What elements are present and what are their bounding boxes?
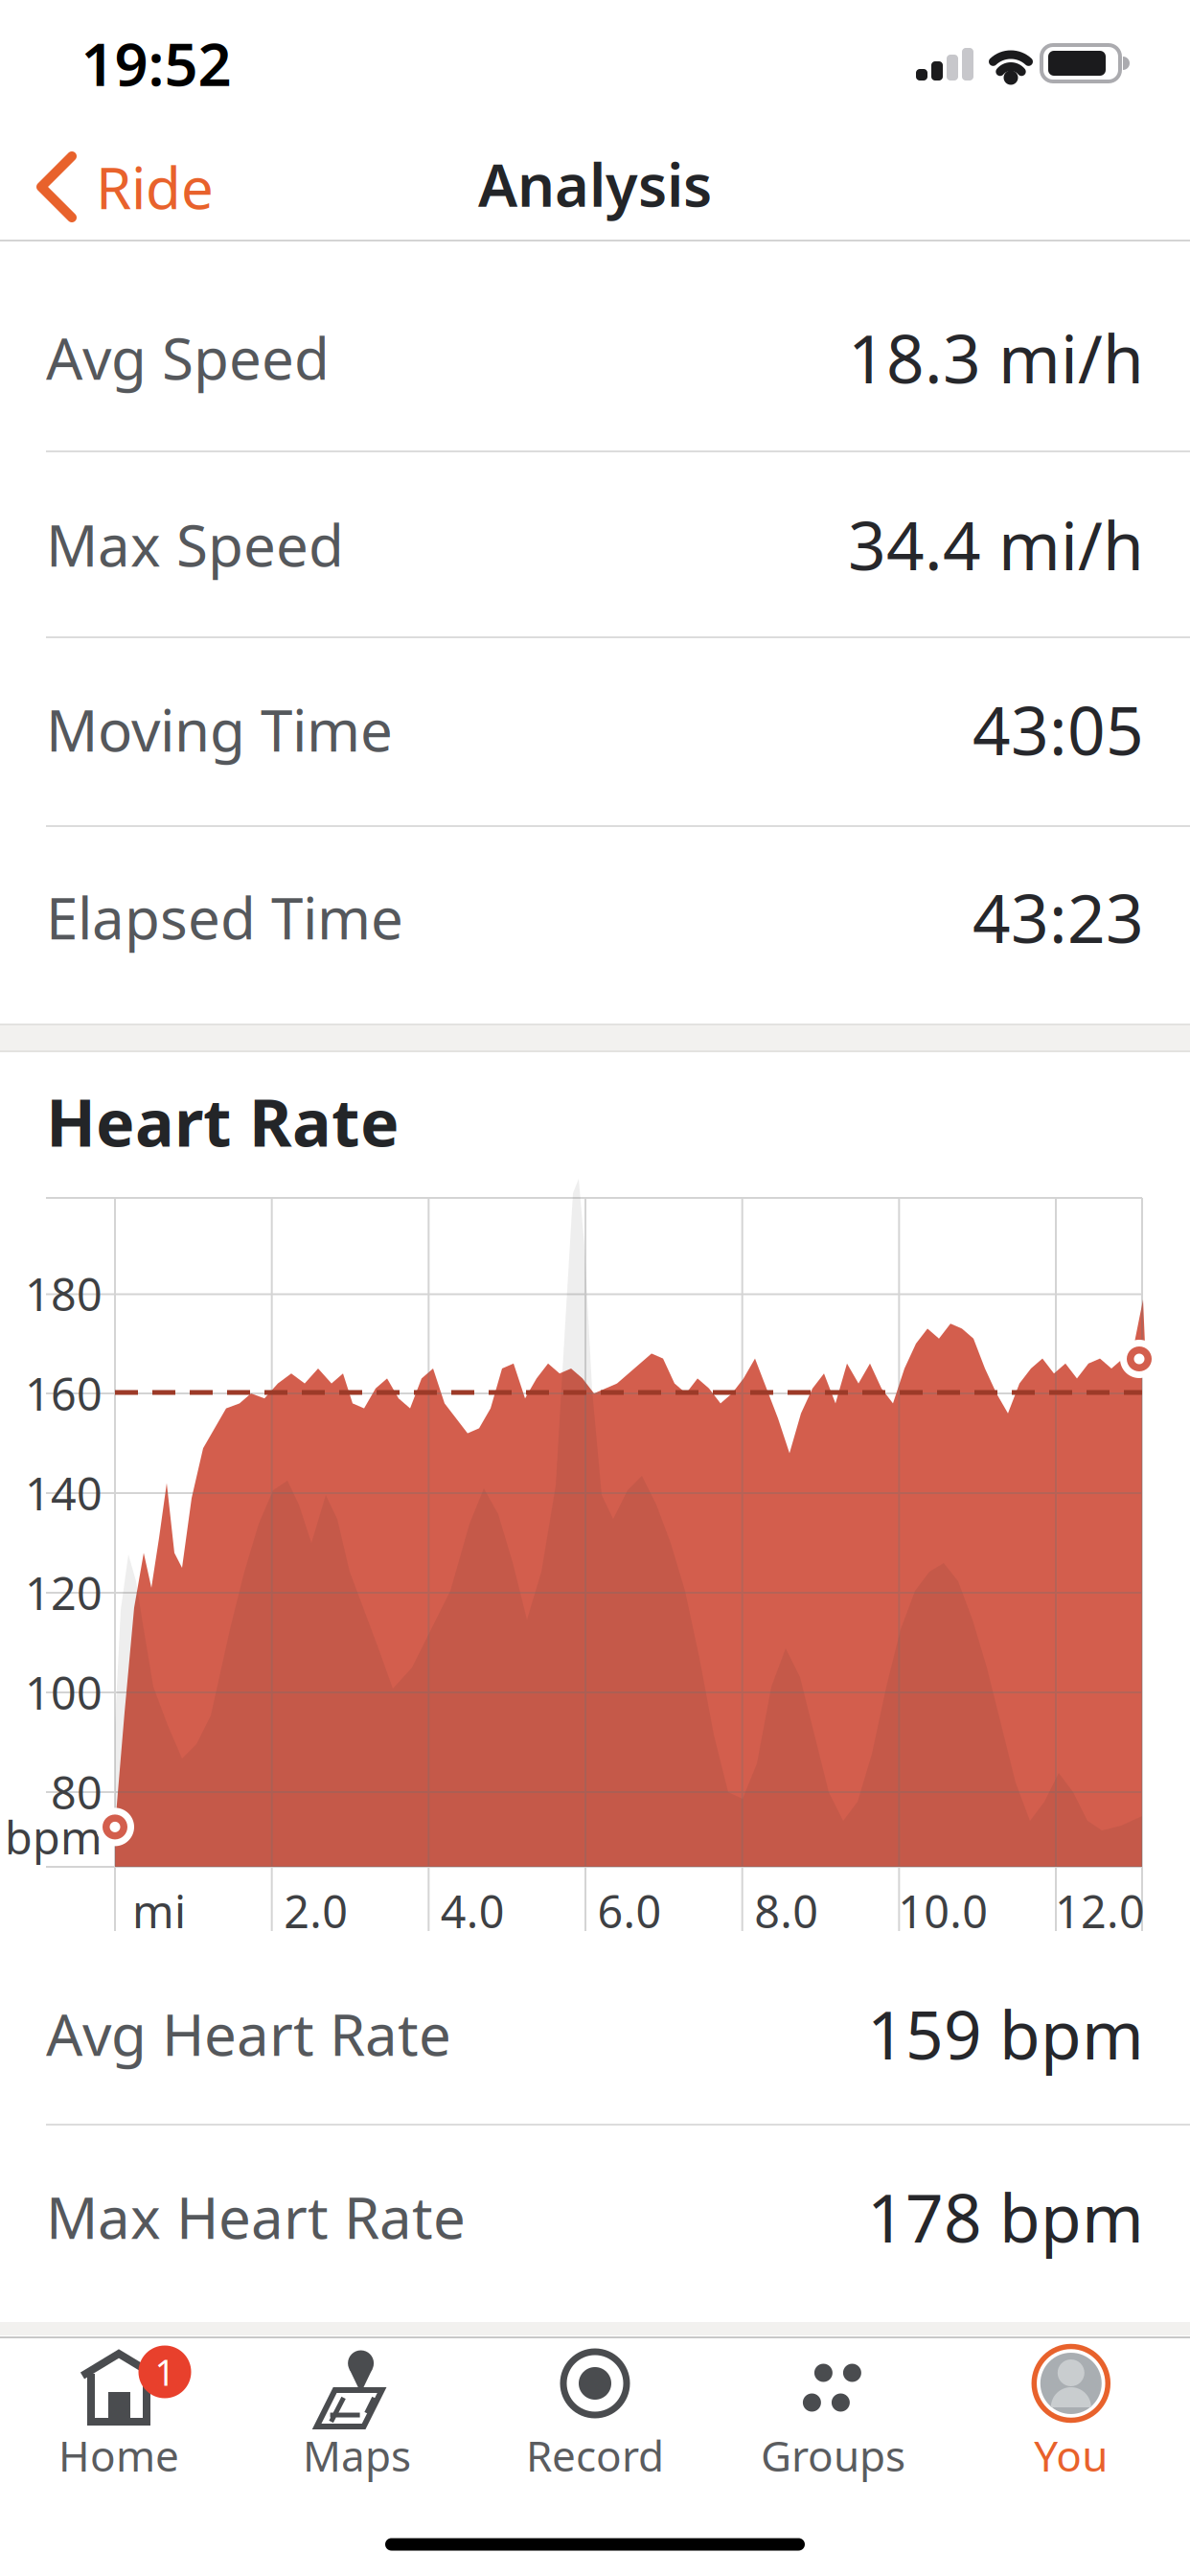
- staticText: Ride: [96, 149, 214, 225]
- staticText: Avg Heart Rate: [46, 1995, 451, 2072]
- button[interactable]: Back: [0, 128, 249, 243]
- button[interactable]: Groups: [737, 2331, 929, 2494]
- staticText: Max Speed: [46, 506, 344, 583]
- staticText: Groups: [761, 2427, 905, 2483]
- staticText: 159 bpm: [867, 1989, 1144, 2078]
- staticText: Home: [58, 2427, 179, 2483]
- staticText: Heart Rate: [46, 1078, 400, 1164]
- staticText: You: [1034, 2427, 1108, 2483]
- staticText: 8.0: [754, 1881, 818, 1941]
- staticText: 180: [25, 1264, 103, 1323]
- staticText: 19:52: [81, 24, 231, 102]
- staticText: 18.3 mi/h: [848, 313, 1144, 402]
- staticText: 178 bpm: [867, 2173, 1144, 2261]
- staticText: Max Heart Rate: [46, 2178, 466, 2255]
- staticText: Avg Speed: [46, 319, 330, 396]
- staticText: 43:23: [973, 873, 1144, 961]
- staticText: 4.0: [441, 1881, 505, 1941]
- staticText: Analysis: [478, 145, 712, 223]
- staticText: 10.0: [898, 1881, 988, 1941]
- staticText: 12.0: [1055, 1881, 1145, 1941]
- staticText: Elapsed Time: [46, 879, 403, 955]
- staticText: Record: [526, 2427, 664, 2483]
- button[interactable]: Maps: [261, 2331, 453, 2494]
- staticText: 80: [51, 1762, 103, 1822]
- staticText: 140: [25, 1463, 103, 1523]
- staticText: bpm: [5, 1807, 103, 1867]
- staticText: 160: [25, 1364, 103, 1423]
- staticText: mi: [132, 1881, 186, 1941]
- staticText: 1: [155, 2348, 175, 2396]
- staticText: 120: [25, 1563, 103, 1622]
- staticText: 100: [25, 1663, 103, 1722]
- button[interactable]: You: [975, 2331, 1167, 2494]
- button[interactable]: Record: [499, 2331, 691, 2494]
- staticText: 34.4 mi/h: [848, 500, 1144, 589]
- staticText: Maps: [303, 2427, 411, 2483]
- staticText: 43:05: [973, 685, 1144, 773]
- staticText: Moving Time: [46, 691, 393, 768]
- staticText: 2.0: [284, 1881, 348, 1941]
- staticText: 6.0: [597, 1881, 662, 1941]
- button[interactable]: Home: [23, 2331, 215, 2494]
